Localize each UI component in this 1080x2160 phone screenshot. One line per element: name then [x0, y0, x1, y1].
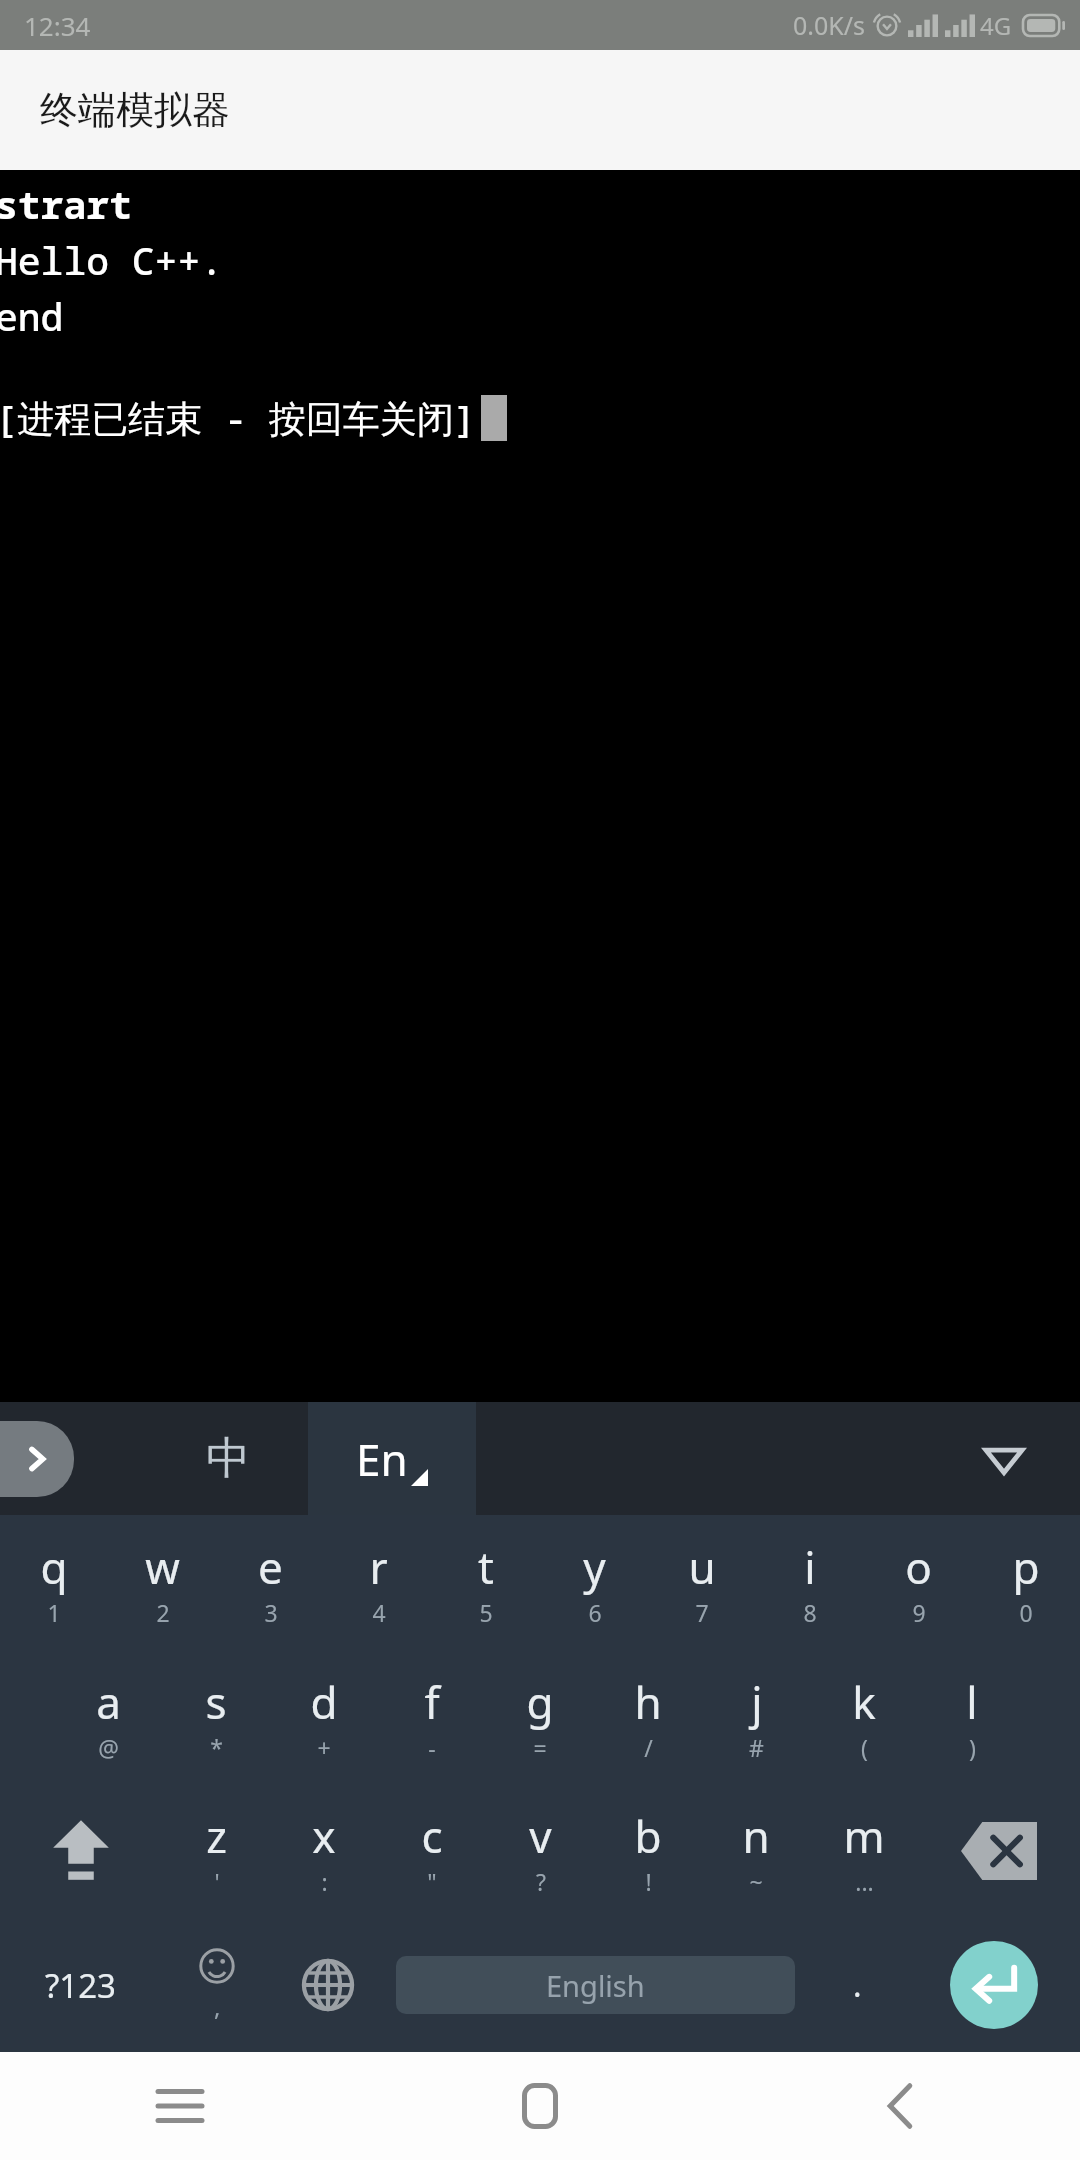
button[interactable]: s	[162, 1650, 270, 1784]
button[interactable]: h	[594, 1650, 702, 1784]
staticText: s	[205, 1672, 227, 1732]
button[interactable]: Emoji	[161, 1918, 272, 2052]
staticText: -	[428, 1732, 436, 1763]
staticText: h	[634, 1672, 662, 1732]
staticText: l	[966, 1672, 978, 1732]
staticText: Hello C++.	[0, 234, 224, 286]
staticText: 0	[1019, 1597, 1033, 1628]
staticText: 中	[206, 1431, 250, 1486]
staticText: n	[742, 1806, 770, 1866]
staticText: o	[905, 1537, 932, 1597]
staticText: y	[583, 1537, 606, 1597]
staticText: 2	[156, 1597, 170, 1628]
button[interactable]: b	[594, 1784, 702, 1918]
staticText: ?123	[45, 1963, 116, 2008]
staticText: k	[852, 1672, 876, 1732]
button[interactable]: a	[54, 1650, 162, 1784]
staticText: ,	[214, 1990, 221, 2023]
staticText: .	[853, 1963, 862, 2007]
button[interactable]: e	[216, 1515, 324, 1650]
staticText: 12:34	[24, 8, 91, 43]
button[interactable]: r	[324, 1515, 432, 1650]
staticText: #	[749, 1732, 764, 1763]
button[interactable]: Enter	[950, 1941, 1038, 2029]
button[interactable]: z	[162, 1784, 270, 1918]
staticText: ?	[536, 1866, 546, 1897]
button[interactable]: u	[648, 1515, 756, 1650]
button[interactable]: .	[807, 1918, 908, 2052]
button[interactable]: i	[756, 1515, 864, 1650]
staticText: v	[529, 1806, 552, 1866]
staticText: r	[369, 1537, 388, 1597]
staticText: j	[751, 1672, 763, 1732]
button[interactable]: v	[486, 1784, 594, 1918]
staticText: 终端模拟器	[40, 86, 230, 134]
staticText: 0.0K/s	[793, 8, 866, 42]
button[interactable]: k	[810, 1650, 918, 1784]
button[interactable]: c	[378, 1784, 486, 1918]
button[interactable]: ?123	[0, 1918, 161, 2052]
button[interactable]: Change language	[272, 1918, 383, 2052]
button[interactable]: j	[702, 1650, 810, 1784]
button[interactable]: Home	[360, 2052, 720, 2160]
staticText: p	[1012, 1537, 1040, 1597]
button[interactable]: m	[810, 1784, 918, 1918]
staticText: /	[644, 1732, 653, 1763]
button[interactable]: q	[0, 1515, 108, 1650]
staticText: c	[421, 1806, 443, 1866]
staticText: i	[804, 1537, 816, 1597]
staticText: m	[843, 1806, 885, 1866]
staticText: 3	[264, 1597, 278, 1628]
staticText: 5	[479, 1597, 493, 1628]
button[interactable]: Shift	[0, 1784, 162, 1918]
staticText: strart	[0, 178, 132, 230]
staticText: z	[206, 1806, 227, 1866]
staticText: 8	[803, 1597, 817, 1628]
button[interactable]: 中	[148, 1402, 308, 1515]
staticText: 9	[912, 1597, 926, 1628]
button[interactable]: w	[108, 1515, 216, 1650]
button[interactable]: English	[396, 1956, 795, 2014]
staticText: f	[424, 1672, 440, 1732]
button[interactable]: Backspace	[918, 1784, 1080, 1918]
staticText: e	[258, 1537, 283, 1597]
button[interactable]: o	[864, 1515, 972, 1650]
staticText: 1	[47, 1597, 61, 1628]
staticText: English	[546, 1966, 645, 2005]
button[interactable]: Back	[720, 2052, 1080, 2160]
button[interactable]: n	[702, 1784, 810, 1918]
staticText: d	[310, 1672, 338, 1732]
staticText: [进程已结束 - 按回车关闭]	[0, 392, 476, 443]
button[interactable]: p	[972, 1515, 1080, 1650]
staticText: ~	[749, 1866, 763, 1897]
staticText: end	[0, 290, 64, 342]
button[interactable]: d	[270, 1650, 378, 1784]
button[interactable]: Menu	[0, 2052, 360, 2160]
staticText: !	[645, 1866, 652, 1897]
button[interactable]: t	[432, 1515, 540, 1650]
staticText: t	[478, 1537, 494, 1597]
staticText: x	[312, 1806, 336, 1866]
staticText: w	[145, 1537, 180, 1597]
staticText: 4G	[980, 9, 1012, 42]
button[interactable]: y	[540, 1515, 648, 1650]
button[interactable]: g	[486, 1650, 594, 1784]
button[interactable]: Hide keyboard	[968, 1423, 1040, 1495]
button[interactable]: x	[270, 1784, 378, 1918]
staticText: q	[40, 1537, 68, 1597]
staticText: En	[356, 1429, 408, 1489]
staticText: =	[533, 1732, 547, 1763]
button[interactable]: f	[378, 1650, 486, 1784]
staticText: g	[526, 1672, 554, 1732]
staticText: )	[969, 1732, 976, 1763]
staticText: '	[214, 1866, 220, 1897]
button[interactable]: Expand toolbar	[0, 1421, 74, 1497]
button[interactable]: En	[308, 1402, 476, 1515]
staticText: 4	[372, 1597, 386, 1628]
staticText: 7	[695, 1597, 709, 1628]
button[interactable]: l	[918, 1650, 1026, 1784]
staticText: (	[861, 1732, 868, 1763]
staticText: *	[210, 1732, 223, 1763]
staticText: +	[317, 1732, 331, 1763]
staticText: "	[427, 1866, 437, 1897]
